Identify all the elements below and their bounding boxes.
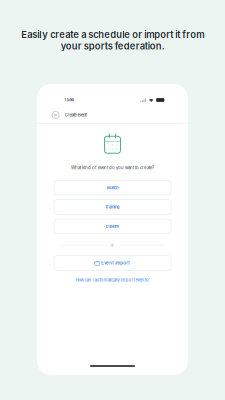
staticText: Create event (64, 112, 86, 117)
staticText: Easily create a schedule or import it fr… (21, 29, 204, 52)
staticText: How can I automatically import events? (75, 277, 149, 283)
staticText: What kind of event do you want to create… (71, 165, 154, 170)
button[interactable]: Event import (54, 256, 171, 270)
staticText: 13:09 (64, 98, 73, 102)
button[interactable]: Custom (54, 219, 171, 234)
button[interactable]: Match (54, 180, 171, 195)
staticText: Custom (105, 224, 119, 229)
button[interactable]: Training (54, 200, 171, 214)
button[interactable]: How can I automatically import events? (75, 277, 149, 283)
button[interactable]: Close (51, 110, 60, 119)
staticText: Event import (101, 260, 130, 266)
staticText: or (110, 243, 114, 248)
staticText: Training (105, 205, 120, 209)
staticText: Match (107, 185, 118, 190)
